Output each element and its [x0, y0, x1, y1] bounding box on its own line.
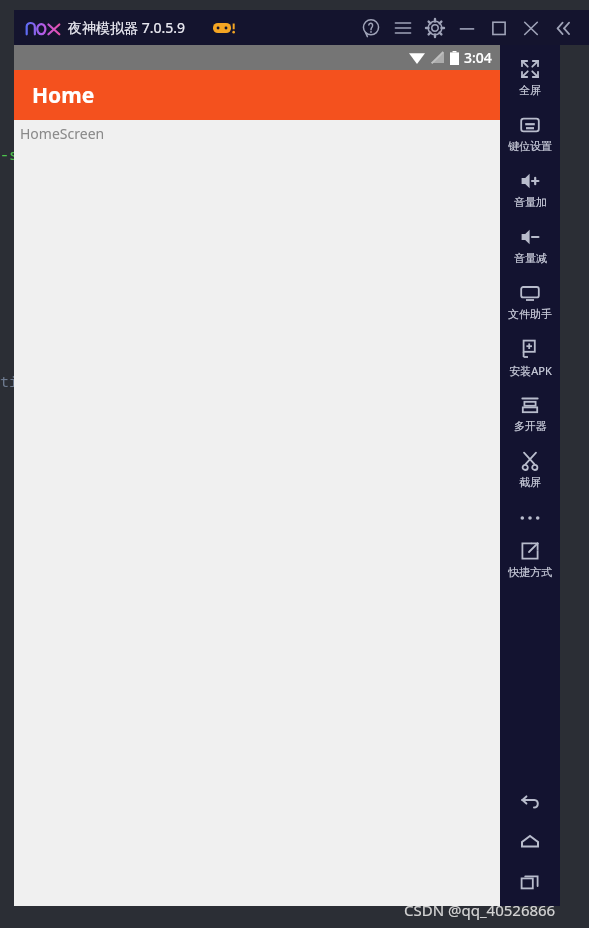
button[interactable]: 全屏: [500, 53, 560, 109]
button[interactable]: Home: [14, 70, 500, 120]
staticText: 多开器: [514, 419, 547, 433]
staticText: 安装APK: [509, 363, 552, 378]
button[interactable]: 文件助手: [500, 277, 560, 333]
staticText: 全屏: [519, 83, 541, 97]
staticText: -st: [0, 144, 28, 164]
button[interactable]: Close: [515, 12, 547, 44]
staticText: 文件助手: [508, 307, 552, 321]
button[interactable]: Home: [508, 826, 552, 858]
button[interactable]: Back: [508, 786, 552, 818]
staticText: 3:04: [464, 48, 492, 67]
staticText: 夜神模拟器 7.0.5.9: [68, 18, 185, 37]
button[interactable]: Collapse: [547, 12, 579, 44]
button[interactable]: More: [500, 501, 560, 535]
staticText: HomeScreen: [20, 124, 105, 143]
button[interactable]: Settings: [419, 12, 451, 44]
button[interactable]: Menu: [387, 12, 419, 44]
button[interactable]: Game assistant: [213, 20, 235, 36]
button[interactable]: 键位设置: [500, 109, 560, 165]
staticText: 音量加: [514, 195, 547, 209]
button[interactable]: Recents: [508, 866, 552, 898]
staticText: ti: [0, 371, 19, 391]
staticText: CSDN @qq_40526866: [404, 900, 556, 920]
button[interactable]: Help: [355, 12, 387, 44]
button[interactable]: 快捷方式: [500, 535, 560, 591]
button[interactable]: 截屏: [500, 445, 560, 501]
staticText: 截屏: [519, 475, 541, 489]
button[interactable]: 安装APK: [500, 333, 560, 389]
button[interactable]: Maximize: [483, 12, 515, 44]
staticText: Home: [32, 81, 95, 110]
button[interactable]: 音量减: [500, 221, 560, 277]
staticText: 键位设置: [508, 139, 552, 153]
button[interactable]: Minimize: [451, 12, 483, 44]
staticText: 快捷方式: [508, 565, 552, 579]
button[interactable]: 多开器: [500, 389, 560, 445]
staticText: 音量减: [514, 251, 547, 265]
button[interactable]: 音量加: [500, 165, 560, 221]
